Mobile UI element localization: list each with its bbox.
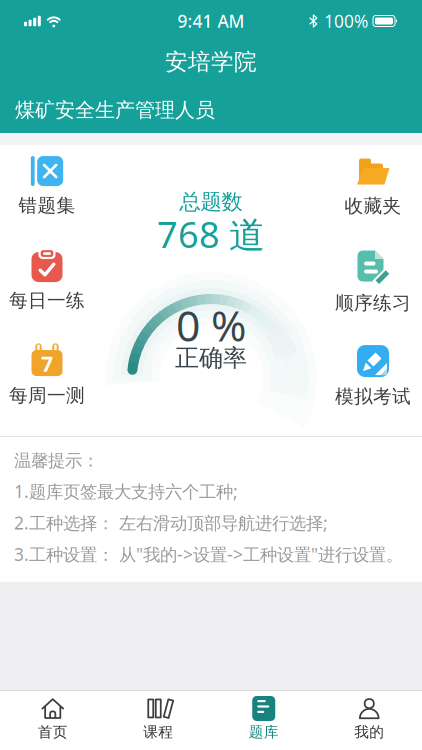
staticText: 3.工种设置： 从"我的->设置->工种设置"进行设置。 bbox=[14, 543, 403, 566]
staticText: 每日一练 bbox=[9, 289, 85, 312]
button[interactable]: 题库 bbox=[211, 696, 316, 741]
button[interactable]: 模拟考试 bbox=[335, 344, 411, 408]
button[interactable]: 首页 bbox=[0, 696, 105, 741]
staticText: 每周一测 bbox=[9, 384, 85, 407]
staticText: 模拟考试 bbox=[335, 385, 411, 408]
button[interactable]: 课程 bbox=[105, 696, 211, 741]
button[interactable]: 7 bbox=[9, 343, 85, 407]
button[interactable]: 我的 bbox=[316, 696, 422, 741]
staticText: 首页 bbox=[38, 723, 68, 741]
staticText: 错题集 bbox=[18, 194, 75, 217]
staticText: 温馨提示： bbox=[14, 450, 99, 471]
staticText: 1.题库页签最大支持六个工种; bbox=[14, 480, 238, 503]
staticText: 2.工种选择： 左右滑动顶部导航进行选择; bbox=[14, 511, 328, 534]
staticText: 768 道 bbox=[157, 210, 265, 258]
staticText: 0 % bbox=[176, 297, 246, 353]
staticText: 安培学院 bbox=[165, 48, 257, 76]
staticText: 题库 bbox=[249, 723, 279, 741]
staticText: 课程 bbox=[143, 723, 173, 741]
staticText: 9:41 AM bbox=[177, 9, 244, 32]
staticText: 收藏夹 bbox=[344, 194, 401, 217]
staticText: 7 bbox=[41, 349, 53, 378]
staticText: 煤矿安全生产管理人员 bbox=[15, 98, 215, 122]
button[interactable]: 每日一练 bbox=[9, 248, 85, 312]
staticText: 总题数 bbox=[179, 189, 242, 215]
staticText: 正确率 bbox=[175, 343, 247, 373]
button[interactable]: 错题集 bbox=[18, 155, 75, 217]
button[interactable]: 收藏夹 bbox=[344, 156, 401, 217]
staticText: 我的 bbox=[354, 723, 384, 741]
staticText: 100% bbox=[324, 9, 368, 32]
staticText: 顺序练习 bbox=[335, 291, 411, 314]
button[interactable]: 顺序练习 bbox=[335, 249, 411, 314]
